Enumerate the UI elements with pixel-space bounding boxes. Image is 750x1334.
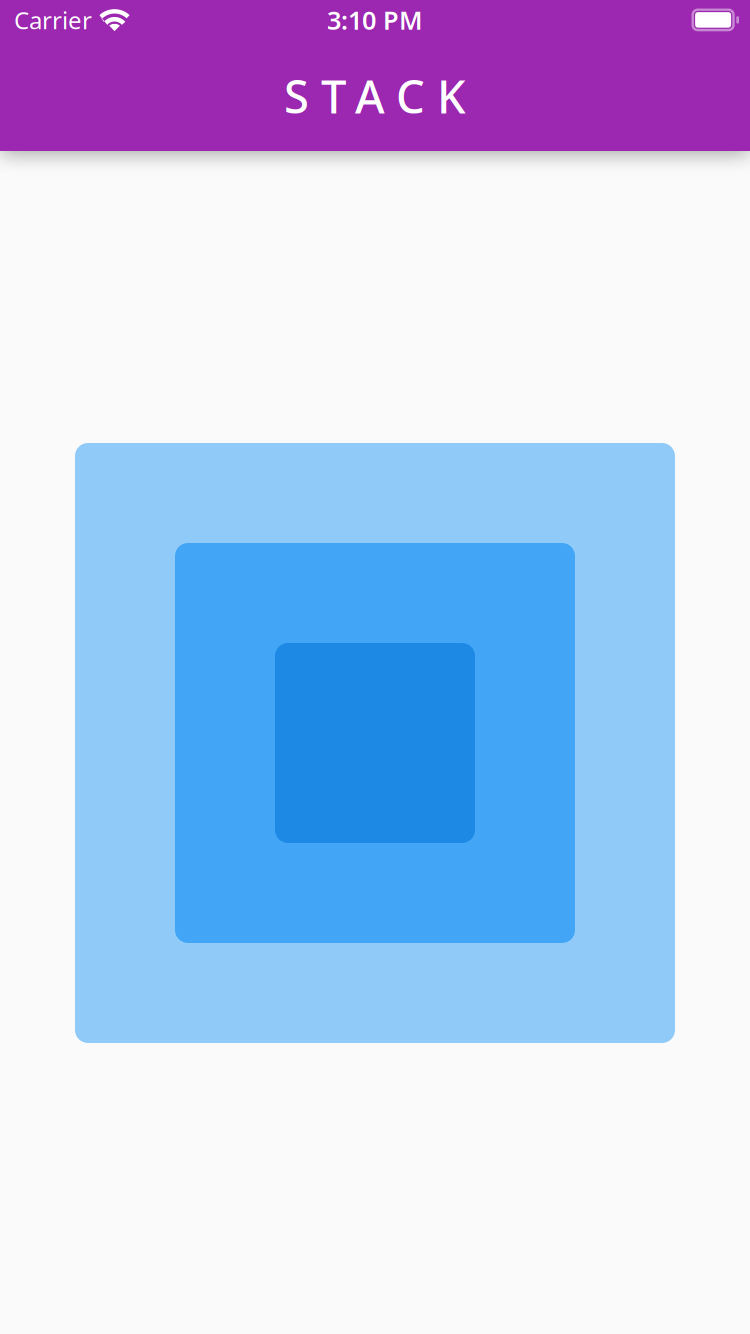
staticText: STACK: [284, 66, 466, 126]
staticText: Carrier: [14, 4, 92, 36]
staticText: 3:10 PM: [327, 3, 423, 37]
